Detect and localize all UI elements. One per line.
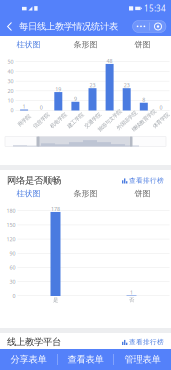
button[interactable]: 饼图 xyxy=(114,188,171,199)
staticText: 8 xyxy=(142,96,145,103)
staticText: 23 xyxy=(89,82,95,89)
staticText: 23 xyxy=(124,82,130,89)
button[interactable]: 查看表单 xyxy=(58,349,113,370)
staticText: 机电学院 xyxy=(48,117,68,124)
staticText: 分享表单 xyxy=(10,354,46,365)
staticText: 柱状图 xyxy=(16,40,40,49)
staticText: 每日线上教学情况统计表 xyxy=(19,21,118,32)
staticText: 50 xyxy=(7,58,13,65)
button[interactable]: 条形图 xyxy=(57,39,114,50)
staticText: 管理表单 xyxy=(124,354,160,365)
staticText: 20 xyxy=(7,87,13,94)
staticText: 90 xyxy=(9,250,15,257)
staticText: 网络是否顺畅 xyxy=(7,175,61,186)
button[interactable]: 条形图 xyxy=(57,188,114,199)
staticText: 150 xyxy=(6,221,15,228)
staticText: 查看排行榜 xyxy=(129,176,164,185)
staticText: 是 xyxy=(53,297,58,303)
staticText: 120 xyxy=(6,236,15,243)
button[interactable]: 查看排行榜 xyxy=(122,176,171,185)
staticText: 信息学院 xyxy=(31,117,51,124)
staticText: 178 xyxy=(51,205,60,212)
staticText: 继续教育学院 xyxy=(129,117,159,124)
staticText: 60 xyxy=(9,264,15,271)
staticText: 180 xyxy=(6,207,15,214)
staticText: 30 xyxy=(7,78,13,85)
staticText: 饼图 xyxy=(134,189,150,198)
staticText: 旅游与文学院 xyxy=(95,117,125,124)
staticText: 条形图 xyxy=(73,189,97,198)
button[interactable]: 管理表单 xyxy=(114,349,171,370)
button[interactable]: 柱状图 xyxy=(0,188,57,199)
button[interactable]: 柱状图 xyxy=(0,39,57,50)
button[interactable]: Back xyxy=(0,20,19,33)
staticText: 条形图 xyxy=(73,40,97,49)
staticText: 否 xyxy=(129,297,134,303)
staticText: 15:34 xyxy=(144,3,166,14)
button[interactable]: 查看排行榜 xyxy=(122,338,171,346)
staticText: 0 xyxy=(159,104,162,111)
staticText: 柱状图 xyxy=(16,189,40,198)
staticText: 10 xyxy=(7,97,13,104)
button[interactable]: 饼图 xyxy=(114,39,171,50)
staticText: 1 xyxy=(23,103,26,110)
staticText: 30 xyxy=(9,278,15,285)
staticText: 48 xyxy=(107,57,113,64)
staticText: 0 xyxy=(40,104,43,111)
staticText: 线上教学平台 xyxy=(7,336,61,348)
button[interactable]: More xyxy=(132,20,149,32)
staticText: 饼图 xyxy=(134,40,150,49)
staticText: 外国语学院 xyxy=(114,117,139,124)
staticText: 1 xyxy=(130,289,133,296)
button[interactable]: Close xyxy=(150,20,166,32)
staticText: 0 xyxy=(12,292,15,299)
staticText: 9 xyxy=(74,95,77,102)
staticText: 40 xyxy=(7,68,13,75)
staticText: 19 xyxy=(55,85,61,93)
staticText: 查看排行榜 xyxy=(129,338,164,346)
staticText: 查看表单 xyxy=(67,354,103,365)
staticText: 商学院 xyxy=(17,117,32,124)
staticText: 交通学院 xyxy=(82,117,102,124)
staticText: 体育学院 xyxy=(151,117,171,124)
staticText: 建工学院 xyxy=(65,117,85,124)
button[interactable]: 分享表单 xyxy=(0,349,57,370)
staticText: 0 xyxy=(10,107,13,114)
